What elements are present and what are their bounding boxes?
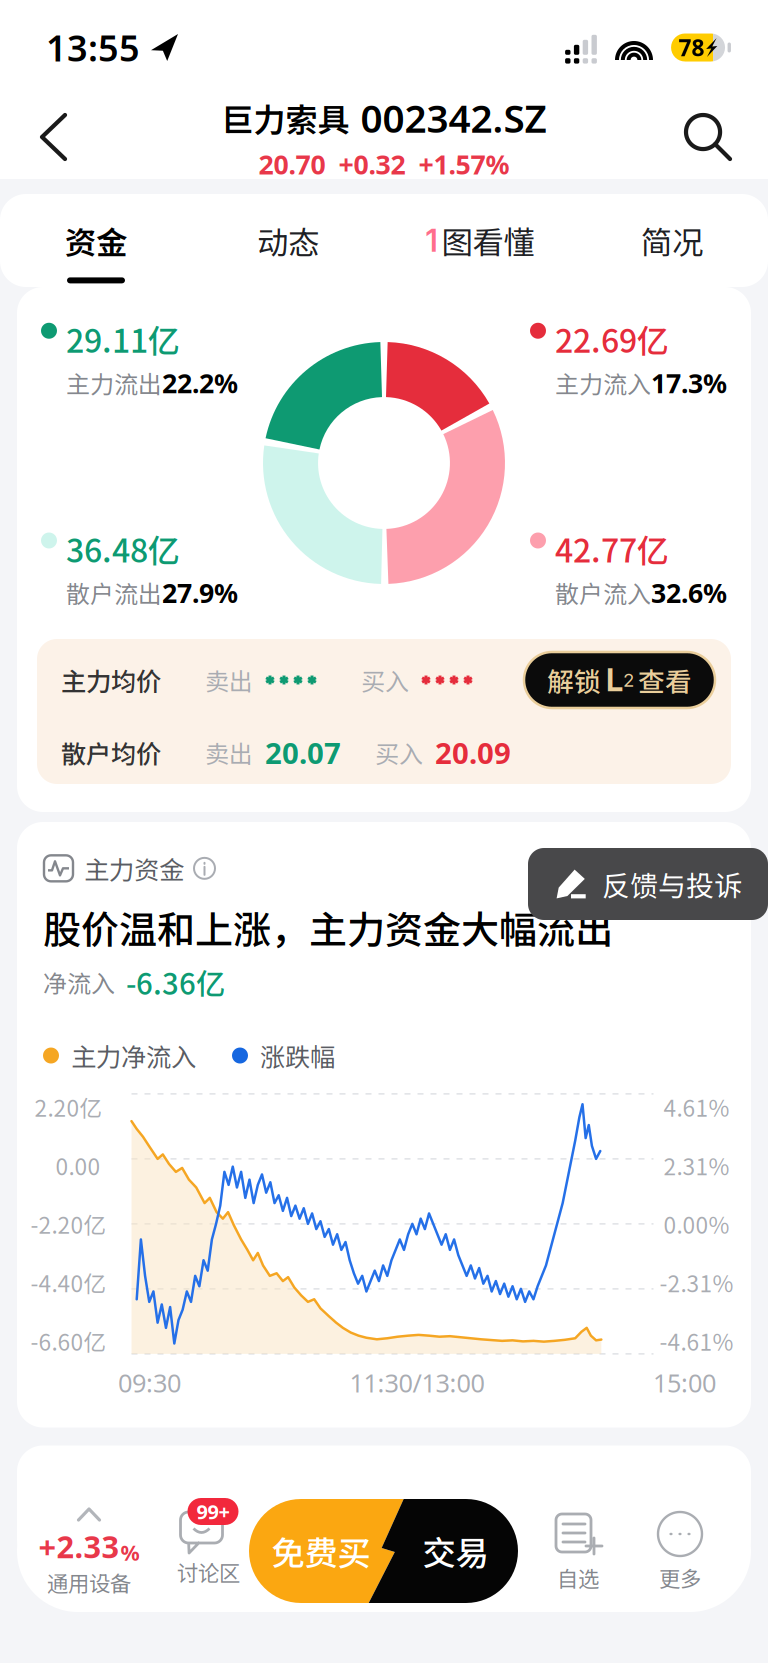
button[interactable]: 1 <box>384 194 576 287</box>
staticText: 散户流出 <box>66 575 162 610</box>
staticText: 27.9% <box>162 575 238 610</box>
staticText: 2 <box>623 669 634 691</box>
staticText: 78 <box>678 32 704 62</box>
staticText: -4.61% <box>659 1324 733 1357</box>
staticText: 1 <box>425 222 437 259</box>
button[interactable]: 解锁 <box>524 652 715 708</box>
staticText: 买入 <box>375 735 423 770</box>
staticText: -6.36亿 <box>126 961 225 1003</box>
button[interactable]: 动态 <box>192 194 384 287</box>
staticText: 解锁 <box>547 661 601 699</box>
staticText: L <box>606 661 623 698</box>
staticText: -4.40亿 <box>30 1266 106 1299</box>
staticText: 自选 <box>557 1562 599 1593</box>
button[interactable]: Back <box>14 95 93 179</box>
staticText: 主力流出 <box>66 365 162 400</box>
staticText: 交易 <box>422 1527 488 1575</box>
staticText: 散户均价 <box>61 734 161 771</box>
staticText: 巨力索具 <box>221 95 349 141</box>
staticText: 15:00 <box>653 1366 716 1399</box>
staticText: 4.61% <box>663 1090 729 1123</box>
staticText: 主力净流入 <box>71 1037 196 1074</box>
button[interactable]: 资金 <box>0 194 192 287</box>
button[interactable]: +2.33 <box>17 1490 161 1612</box>
button[interactable]: 简况 <box>576 194 768 287</box>
staticText: 42.77亿 <box>555 525 669 572</box>
staticText: 36.48亿 <box>66 525 180 572</box>
staticText: +2.33 <box>38 1526 119 1567</box>
staticText: 2.20亿 <box>34 1090 102 1123</box>
staticText: 99+ <box>196 1498 229 1525</box>
staticText: 涨跌幅 <box>260 1037 335 1074</box>
staticText: 11:30/13:00 <box>349 1366 484 1399</box>
staticText: 22.69亿 <box>555 316 669 362</box>
staticText: 20.70 <box>258 146 325 182</box>
staticText: 17.3% <box>651 365 727 400</box>
staticText: 简况 <box>641 218 703 263</box>
staticText: -2.31% <box>659 1266 733 1299</box>
staticText: % <box>120 1538 139 1567</box>
button[interactable]: 99+ <box>161 1490 256 1612</box>
staticText: 002342.SZ <box>360 92 546 143</box>
button[interactable]: 自选 <box>527 1490 629 1612</box>
staticText: 20.09 <box>435 733 511 772</box>
staticText: 更多 <box>659 1562 701 1593</box>
staticText: -6.60亿 <box>30 1324 106 1357</box>
staticText: 卖出 <box>205 735 253 770</box>
staticText: +1.57% <box>418 146 509 182</box>
staticText: 通用设备 <box>47 1567 131 1598</box>
button[interactable]: 免费买 <box>249 1499 518 1603</box>
staticText: 反馈与投诉 <box>602 864 742 904</box>
staticText: 32.6% <box>651 575 727 610</box>
staticText: 主力流入 <box>555 365 651 400</box>
button[interactable]: 更多 <box>629 1490 731 1612</box>
staticText: +0.32 <box>338 146 405 182</box>
button[interactable]: 反馈与投诉 <box>528 848 768 920</box>
staticText: 卖出 <box>205 663 253 697</box>
button[interactable]: Search <box>662 95 754 179</box>
staticText: -2.20亿 <box>30 1207 106 1240</box>
staticText: 查看 <box>638 661 692 699</box>
staticText: 0.00 <box>55 1149 100 1182</box>
staticText: 2.31% <box>663 1149 729 1182</box>
staticText: 29.11亿 <box>66 316 180 362</box>
staticText: 0.00% <box>663 1207 729 1240</box>
staticText: 散户流入 <box>555 575 651 610</box>
staticText: 13:55 <box>46 24 140 71</box>
staticText: 免费买 <box>271 1527 370 1575</box>
staticText: 主力均价 <box>61 662 161 698</box>
staticText: 资金 <box>65 218 127 263</box>
staticText: 讨论区 <box>177 1556 240 1587</box>
staticText: 动态 <box>257 218 319 263</box>
staticText: 买入 <box>361 663 409 697</box>
staticText: 22.2% <box>162 365 238 400</box>
staticText: 20.07 <box>265 733 341 772</box>
staticText: 图看懂 <box>441 218 534 263</box>
staticText: 09:30 <box>118 1366 181 1399</box>
staticText: 净流入 <box>43 965 115 999</box>
staticText: 股价温和上涨，主力资金大幅流出 <box>43 900 613 955</box>
staticText: 主力资金 <box>84 850 184 887</box>
